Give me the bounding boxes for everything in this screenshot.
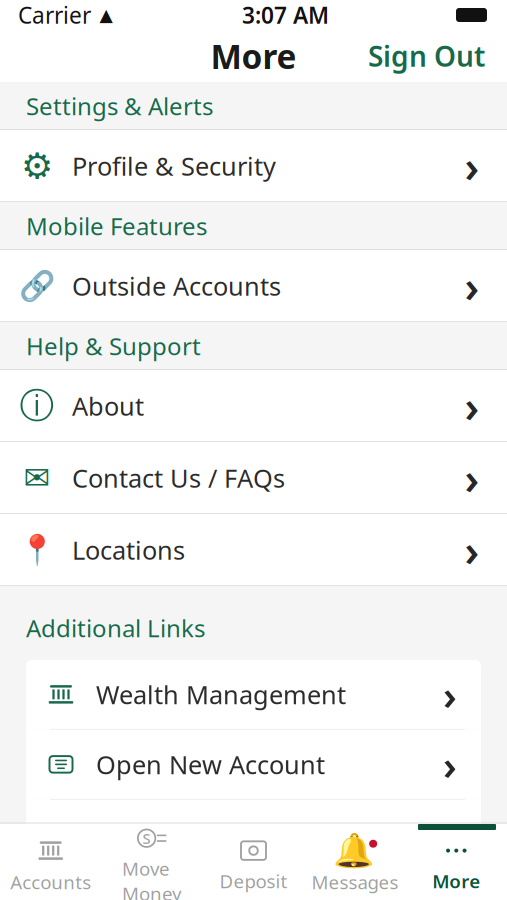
- button[interactable]: More: [406, 830, 507, 900]
- staticText: ›: [464, 258, 479, 314]
- staticText: 🔗: [18, 269, 55, 303]
- staticText: Messages: [311, 870, 398, 894]
- staticText: ›: [443, 668, 457, 721]
- button[interactable]: S: [101, 830, 203, 900]
- staticText: Wealth Management: [96, 678, 346, 711]
- staticText: Contact Us / FAQs: [72, 461, 285, 495]
- button[interactable]: Wealth Management: [26, 660, 481, 729]
- staticText: 📍: [18, 533, 55, 567]
- staticText: More: [432, 869, 480, 893]
- staticText: Accounts: [10, 870, 91, 894]
- staticText: Mobile Features: [26, 210, 207, 242]
- staticText: More: [210, 34, 296, 78]
- staticText: Carrier: [18, 0, 91, 30]
- button[interactable]: 🔔: [304, 830, 406, 900]
- button[interactable]: Accounts: [0, 830, 101, 900]
- staticText: ▲: [99, 5, 112, 25]
- staticText: About: [72, 389, 144, 423]
- button[interactable]: 📍: [0, 514, 507, 586]
- button[interactable]: ⚙: [0, 130, 507, 202]
- button[interactable]: Deposit: [203, 830, 304, 900]
- staticText: ⓘ: [19, 385, 54, 427]
- button[interactable]: 🔗: [0, 250, 507, 322]
- staticText: Sign Out: [368, 37, 485, 75]
- staticText: Help & Support: [26, 330, 201, 362]
- staticText: Outside Accounts: [72, 269, 281, 303]
- staticText: ›: [464, 522, 479, 578]
- button[interactable]: Mortgage Services: [26, 800, 481, 869]
- staticText: Profile & Security: [72, 149, 276, 183]
- staticText: ›: [464, 138, 479, 194]
- button[interactable]: Sign Out: [354, 27, 499, 85]
- button[interactable]: ✉: [0, 442, 507, 514]
- staticText: S: [143, 828, 151, 848]
- staticText: 3:07 AM: [242, 0, 329, 30]
- staticText: Move Money: [122, 856, 182, 900]
- staticText: ›: [464, 378, 479, 434]
- staticText: 🔔: [333, 832, 375, 870]
- staticText: ›: [464, 450, 479, 506]
- staticText: Open New Account: [96, 748, 325, 781]
- staticText: ⚙: [21, 146, 53, 186]
- staticText: Settings & Alerts: [26, 90, 213, 122]
- staticText: ›: [443, 738, 457, 791]
- button[interactable]: ⓘ: [0, 370, 507, 442]
- staticText: Deposit: [219, 869, 287, 893]
- staticText: ✉: [23, 460, 50, 496]
- staticText: Mortgage Services: [96, 818, 316, 851]
- staticText: Additional Links: [26, 612, 205, 644]
- staticText: ›: [443, 808, 457, 861]
- staticText: Locations: [72, 533, 185, 567]
- button[interactable]: Open New Account: [26, 730, 481, 799]
